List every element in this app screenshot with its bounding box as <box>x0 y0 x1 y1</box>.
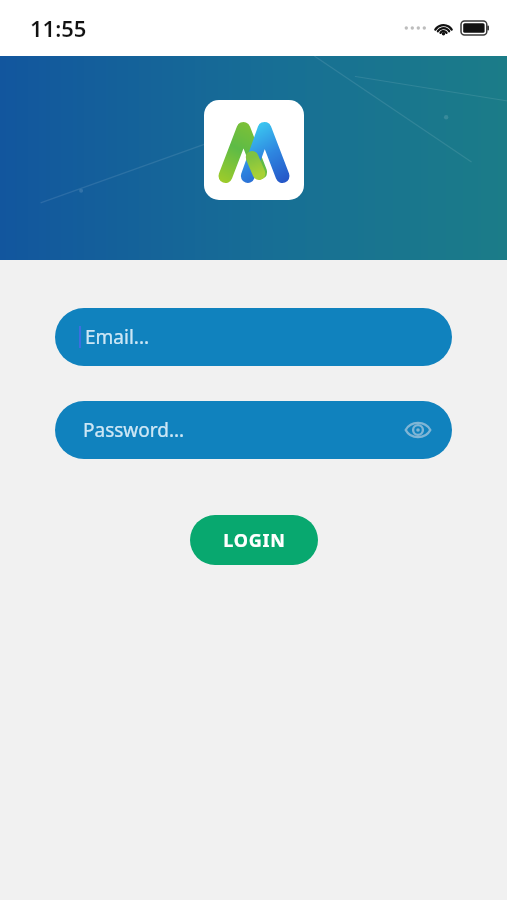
staticText: Email... <box>85 324 150 350</box>
button[interactable]: Show password <box>398 410 438 450</box>
button[interactable]: LOGIN <box>190 515 318 565</box>
staticText: LOGIN <box>223 528 286 553</box>
button[interactable]: Email... <box>55 308 452 366</box>
staticText: 11:55 <box>30 13 87 43</box>
staticText: Password... <box>83 417 185 443</box>
button[interactable]: Password... <box>55 401 452 459</box>
